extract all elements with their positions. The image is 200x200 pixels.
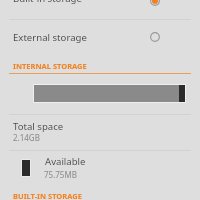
staticText: 2.14GB: [13, 132, 40, 143]
staticText: Built-in storage: [13, 0, 82, 5]
staticText: INTERNAL STORAGE: [13, 61, 87, 71]
button[interactable]: Selected: [145, 0, 165, 11]
staticText: Available: [45, 155, 86, 168]
button[interactable]: External storage: [0, 19, 200, 56]
staticText: 75.75MB: [44, 169, 77, 180]
button[interactable]: Built-in storage: [0, 0, 200, 17]
staticText: Total space: [13, 120, 64, 133]
staticText: BUILT-IN STORAGE: [13, 191, 82, 200]
button[interactable]: Not selected: [145, 27, 165, 47]
staticText: External storage: [13, 31, 87, 44]
